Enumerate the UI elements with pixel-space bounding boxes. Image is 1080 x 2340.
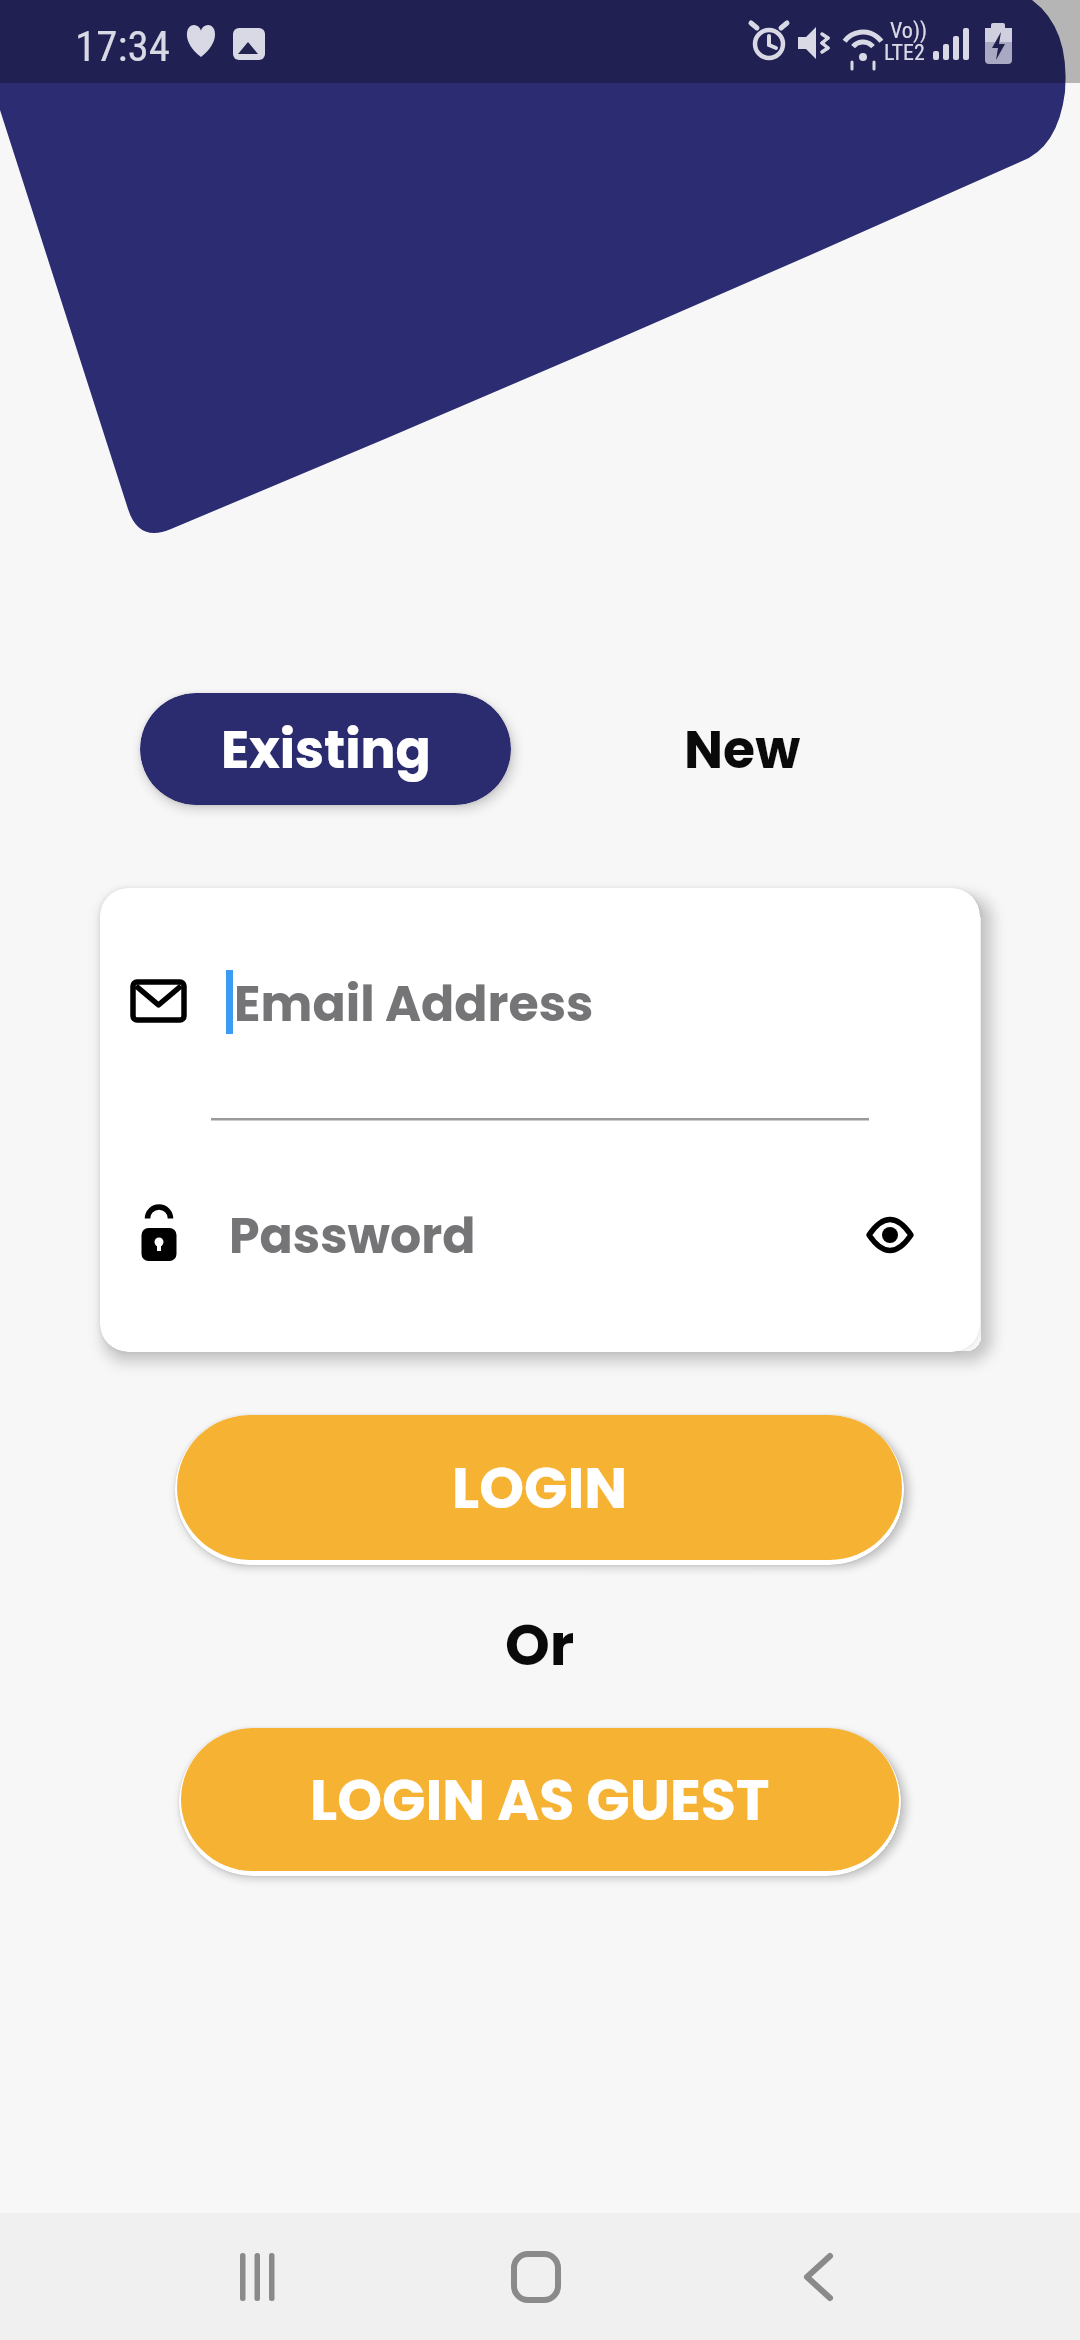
button[interactable] (205, 2223, 315, 2330)
button[interactable] (763, 2223, 873, 2330)
button[interactable]: LOGIN AS GUEST (181, 1728, 899, 1871)
staticText: Existing (221, 713, 431, 786)
staticText: Password (229, 1202, 476, 1271)
button[interactable]: LOGIN (177, 1415, 902, 1560)
staticText: LTE2 (884, 40, 925, 66)
staticText: Email Address (234, 970, 594, 1039)
staticText: New (684, 713, 801, 786)
staticText: Vo)) (890, 18, 927, 44)
button[interactable] (481, 2223, 591, 2330)
staticText: LOGIN (452, 1448, 628, 1528)
staticText: Or (505, 1605, 575, 1685)
button[interactable] (850, 1193, 930, 1273)
button[interactable]: New (657, 693, 827, 805)
staticText: 17:34 (75, 21, 170, 71)
staticText: LOGIN AS GUEST (310, 1760, 770, 1840)
button[interactable]: Existing (140, 693, 511, 805)
